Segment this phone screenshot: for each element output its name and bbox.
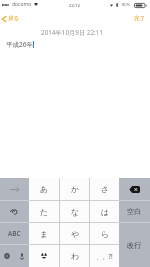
staticText: ら xyxy=(101,229,109,239)
staticText: ま xyxy=(40,229,48,239)
button[interactable]: た xyxy=(29,201,59,222)
staticText: わ xyxy=(71,251,79,261)
staticText: docomo xyxy=(12,1,32,8)
button[interactable]: ら xyxy=(90,223,119,244)
staticText: 、。?! xyxy=(96,252,113,260)
staticText: 平成26年 xyxy=(6,40,33,49)
button[interactable]: Switch keyboard xyxy=(0,245,14,267)
button[interactable]: ま xyxy=(29,223,59,244)
button[interactable]: は xyxy=(90,201,119,222)
button[interactable]: 改行 xyxy=(119,223,150,267)
button[interactable]: わ xyxy=(60,245,89,267)
button[interactable]: Undo xyxy=(0,201,29,222)
staticText: 2014年10月9日 22:11 xyxy=(0,28,147,37)
button[interactable]: か xyxy=(60,178,89,200)
staticText: や xyxy=(71,229,79,239)
button[interactable]: 戻る xyxy=(0,13,24,24)
staticText: た xyxy=(40,207,48,217)
button[interactable]: さ xyxy=(90,178,119,200)
staticText: 空白 xyxy=(127,207,142,216)
staticText: さ xyxy=(101,184,109,194)
button[interactable]: な xyxy=(60,201,89,222)
button[interactable]: Dictation xyxy=(14,245,29,267)
button[interactable]: ABC xyxy=(0,223,29,244)
staticText: は xyxy=(101,207,109,217)
button[interactable]: Small kana and dakuten xyxy=(29,245,59,267)
staticText: あ xyxy=(40,184,48,194)
staticText: な xyxy=(71,207,79,217)
staticText: 改行 xyxy=(127,241,142,250)
staticText: 80% xyxy=(122,2,131,8)
staticText: ABC xyxy=(8,229,21,238)
button[interactable]: Delete xyxy=(119,178,150,200)
staticText: 完了 xyxy=(134,15,146,22)
staticText: か xyxy=(71,184,79,194)
button[interactable]: 空白 xyxy=(119,201,150,222)
button[interactable]: 、。?! xyxy=(90,245,119,267)
button[interactable]: や xyxy=(60,223,89,244)
button[interactable]: 完了 xyxy=(130,13,150,24)
button[interactable]: Next candidate xyxy=(0,178,29,200)
button[interactable]: あ xyxy=(29,178,59,200)
staticText: 戻る xyxy=(8,15,20,22)
staticText: 22:12 xyxy=(69,2,80,8)
